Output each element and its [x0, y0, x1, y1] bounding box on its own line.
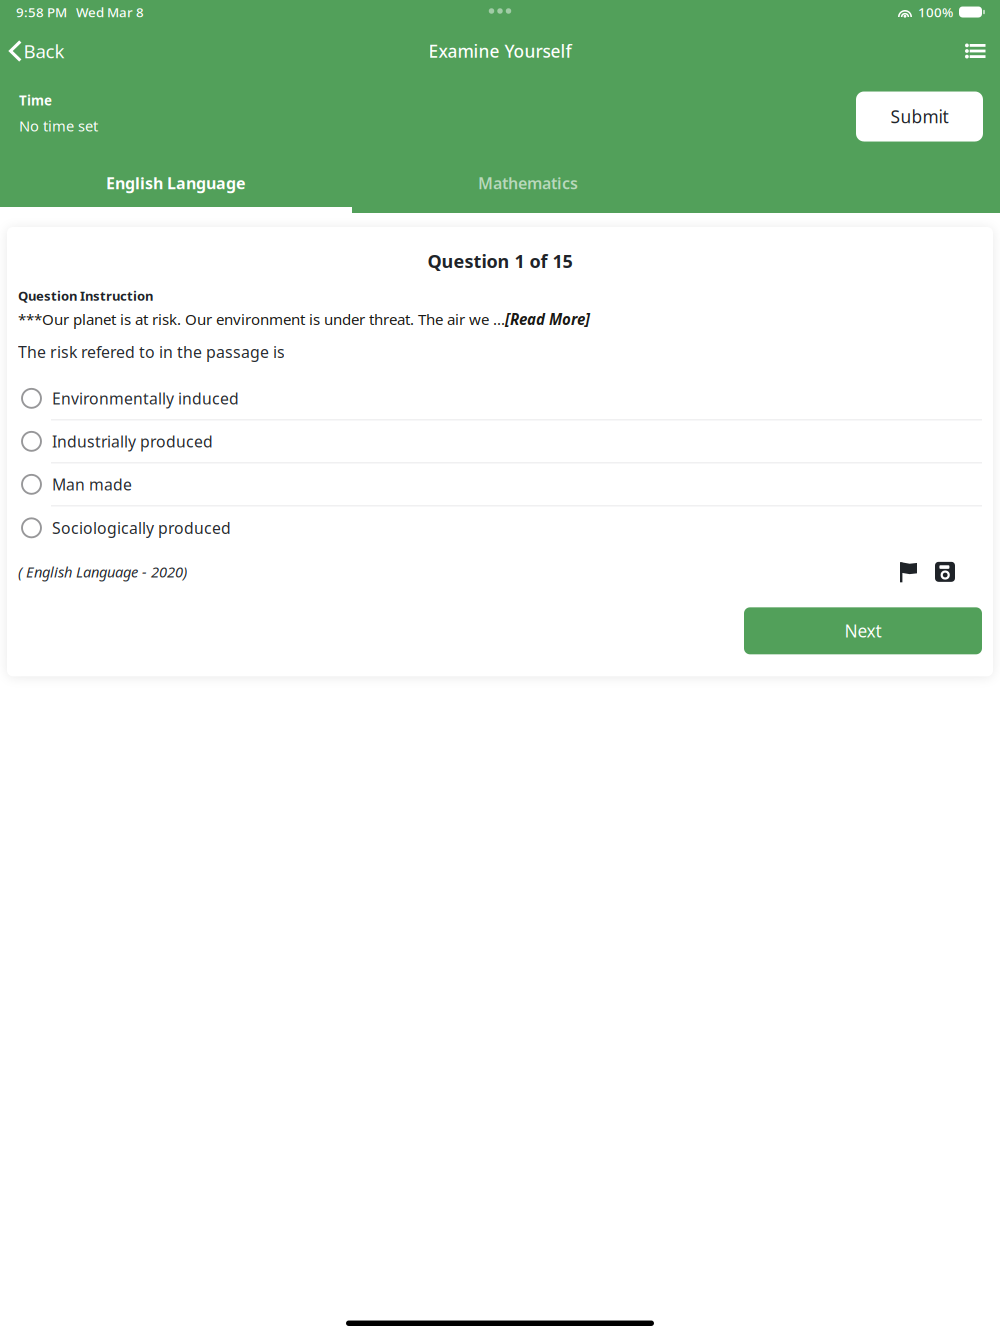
staticText: 100%: [918, 3, 953, 21]
button[interactable]: Mathematics: [352, 159, 704, 207]
button[interactable]: Industrially produced: [18, 420, 982, 463]
button[interactable]: Sociologically produced: [18, 506, 982, 549]
staticText: Question 1 of 15: [427, 249, 572, 273]
button[interactable]: Next: [744, 607, 982, 654]
staticText: 9:58 PM Wed Mar 8: [16, 3, 144, 21]
staticText: Environmentally induced: [52, 388, 239, 409]
button[interactable]: Man made: [18, 463, 982, 506]
staticText: English Language: [106, 172, 246, 194]
button[interactable]: Question list: [951, 28, 1000, 74]
staticText: Man made: [52, 474, 132, 495]
staticText: Mathematics: [478, 172, 578, 194]
button[interactable]: Save question: [917, 562, 955, 582]
staticText: Submit: [890, 105, 948, 128]
staticText: Industrially produced: [52, 431, 213, 452]
staticText: Back: [23, 39, 64, 63]
button[interactable]: Flag question: [900, 561, 917, 582]
staticText: Question Instruction: [18, 287, 153, 304]
staticText: ( English Language - 2020): [18, 562, 187, 582]
staticText: ***Our planet is at risk. Our environmen…: [18, 309, 590, 329]
staticText: The risk refered to in the passage is: [18, 341, 285, 362]
staticText: Examine Yourself: [428, 39, 571, 62]
button[interactable]: Back: [0, 28, 74, 74]
staticText: Time: [19, 91, 52, 109]
button[interactable]: Environmentally induced: [18, 377, 982, 420]
button[interactable]: English Language: [0, 159, 352, 207]
staticText: No time set: [19, 116, 98, 136]
button[interactable]: Submit: [856, 91, 983, 141]
staticText: Sociologically produced: [52, 517, 231, 538]
staticText: Next: [844, 619, 881, 642]
